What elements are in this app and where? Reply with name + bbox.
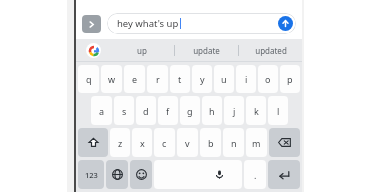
staticText: hey what's up xyxy=(117,17,179,30)
button[interactable]: y xyxy=(192,65,212,93)
staticText: m xyxy=(252,137,261,149)
staticText: k xyxy=(254,105,259,117)
staticText: l xyxy=(277,105,280,117)
button[interactable]: v xyxy=(177,128,198,157)
staticText: i xyxy=(245,73,248,85)
button[interactable]: w xyxy=(101,65,122,93)
button[interactable]: i xyxy=(236,65,256,93)
button[interactable]: Backspace xyxy=(269,128,300,157)
staticText: d xyxy=(143,105,149,117)
staticText: w xyxy=(108,73,116,85)
staticText: updated xyxy=(255,45,287,56)
button[interactable]: a xyxy=(91,96,112,125)
button[interactable]: hey what's up xyxy=(107,13,296,34)
button[interactable]: Shift xyxy=(78,128,108,157)
button[interactable]: 123 xyxy=(78,160,104,189)
button[interactable]: g xyxy=(180,96,200,125)
button[interactable]: m xyxy=(246,128,267,157)
staticText: n xyxy=(231,137,237,149)
staticText: a xyxy=(99,105,105,117)
staticText: g xyxy=(187,105,193,117)
button[interactable]: b xyxy=(200,128,221,157)
staticText: t xyxy=(178,73,182,85)
button[interactable]: l xyxy=(268,96,288,125)
button[interactable]: updated xyxy=(239,39,302,62)
button[interactable]: j xyxy=(224,96,244,125)
staticText: b xyxy=(208,137,214,149)
staticText: e xyxy=(132,73,138,85)
button[interactable]: up xyxy=(110,39,174,62)
button[interactable]: e xyxy=(124,65,145,93)
button[interactable]: h xyxy=(202,96,222,125)
staticText: o xyxy=(265,73,271,85)
button[interactable]: Send xyxy=(278,16,293,31)
staticText: 123 xyxy=(85,170,98,180)
staticText: u xyxy=(221,73,227,85)
button[interactable]: Google xyxy=(76,39,110,62)
button[interactable]: q xyxy=(78,65,99,93)
staticText: x xyxy=(140,137,145,149)
button[interactable]: k xyxy=(246,96,266,125)
button[interactable]: x xyxy=(132,128,152,157)
button[interactable]: Language xyxy=(106,160,128,189)
staticText: f xyxy=(166,105,170,117)
button[interactable]: z xyxy=(110,128,130,157)
staticText: r xyxy=(156,73,160,85)
button[interactable]: Enter xyxy=(268,160,300,189)
button[interactable]: f xyxy=(158,96,178,125)
button[interactable]: p xyxy=(280,65,300,93)
button[interactable]: o xyxy=(258,65,278,93)
button[interactable]: s xyxy=(114,96,134,125)
staticText: . xyxy=(254,169,257,181)
button[interactable]: r xyxy=(147,65,168,93)
staticText: p xyxy=(287,73,293,85)
staticText: update xyxy=(193,45,220,56)
staticText: z xyxy=(118,137,123,149)
button[interactable]: update xyxy=(175,39,238,62)
staticText: c xyxy=(162,137,167,149)
button[interactable]: d xyxy=(136,96,156,125)
staticText: h xyxy=(209,105,215,117)
staticText: j xyxy=(233,105,236,117)
button[interactable]: t xyxy=(170,65,190,93)
staticText: y xyxy=(200,73,205,85)
button[interactable]: Space xyxy=(154,160,242,189)
button[interactable]: Expand xyxy=(82,15,101,33)
button[interactable]: n xyxy=(223,128,244,157)
staticText: q xyxy=(86,73,92,85)
staticText: v xyxy=(185,137,190,149)
button[interactable]: . xyxy=(244,160,266,189)
button[interactable]: Emoji xyxy=(130,160,152,189)
button[interactable]: u xyxy=(214,65,234,93)
staticText: s xyxy=(122,105,127,117)
button[interactable]: c xyxy=(154,128,175,157)
staticText: up xyxy=(137,45,147,56)
